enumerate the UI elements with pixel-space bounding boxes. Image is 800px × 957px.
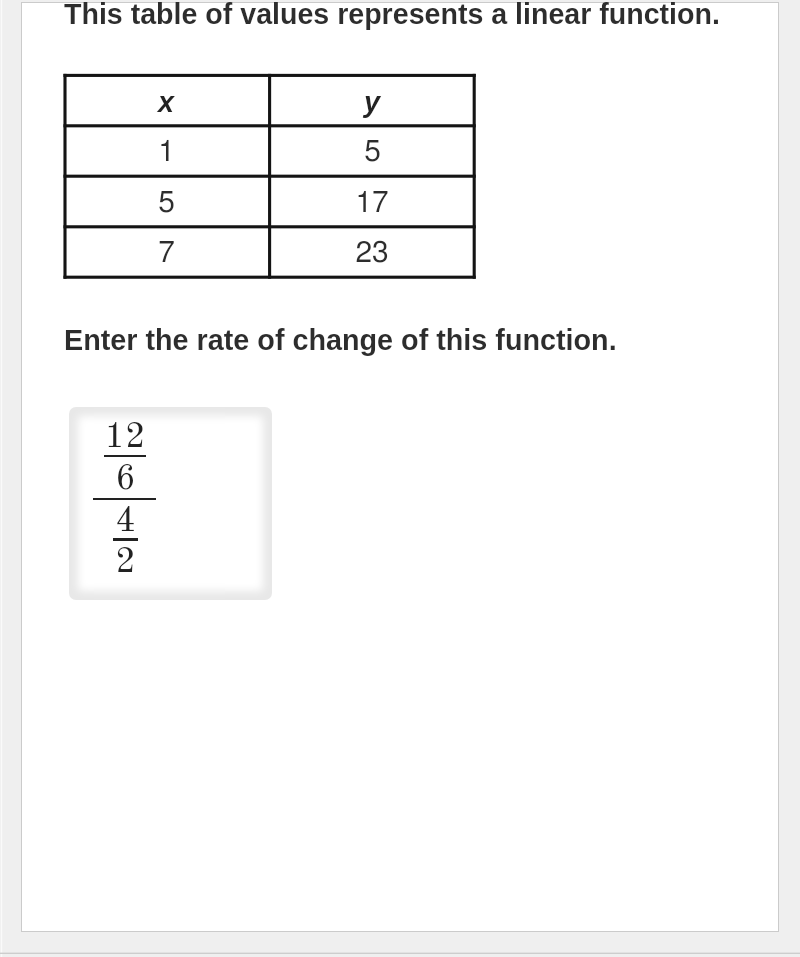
staticText: 5 xyxy=(158,188,175,218)
staticText: 12 xyxy=(104,420,146,455)
staticText: 4 xyxy=(115,504,136,539)
staticText: 2 xyxy=(115,545,136,580)
staticText: This table of values represents a linear… xyxy=(64,0,720,30)
staticText: Enter the rate of change of this functio… xyxy=(64,324,617,356)
staticText: 23 xyxy=(355,238,389,268)
staticText: y xyxy=(364,86,380,118)
staticText: 17 xyxy=(355,188,389,218)
staticText: 6 xyxy=(115,462,136,497)
staticText: 1 xyxy=(158,137,175,167)
button[interactable]: Answer choice: twelve sixths over four h… xyxy=(69,407,272,600)
staticText: 5 xyxy=(364,137,381,167)
staticText: 7 xyxy=(158,238,175,268)
staticText: x xyxy=(158,86,174,118)
